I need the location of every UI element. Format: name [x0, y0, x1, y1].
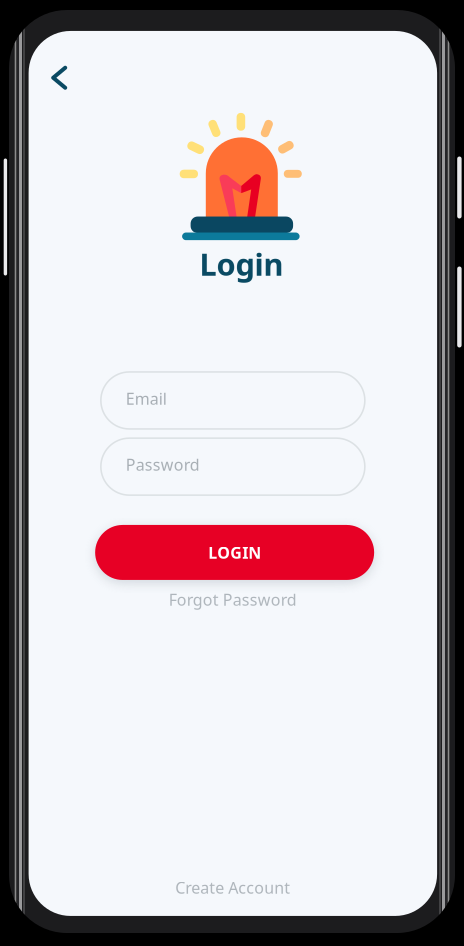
staticText: Login [200, 243, 284, 284]
staticText: Email [126, 388, 167, 409]
button[interactable]: Create Account [167, 869, 298, 906]
staticText: Create Account [175, 877, 290, 898]
button[interactable]: Forgot Password [161, 581, 305, 618]
button[interactable]: Back [37, 53, 81, 102]
button[interactable]: LOGIN [95, 525, 374, 580]
staticText: LOGIN [208, 542, 261, 563]
staticText: Forgot Password [169, 589, 297, 610]
staticText: Password [126, 454, 200, 475]
